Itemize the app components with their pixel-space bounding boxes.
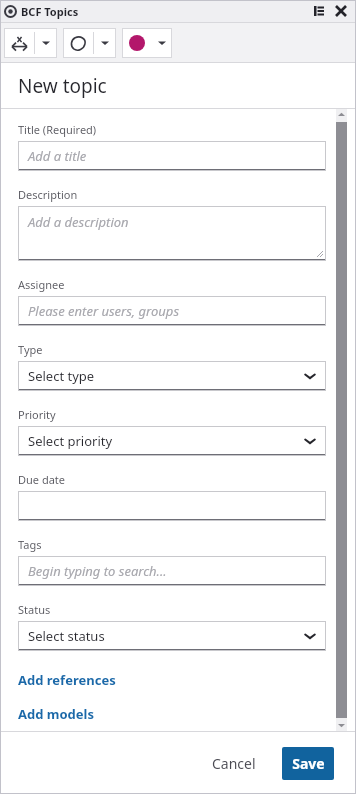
staticText: Title (Required) <box>18 122 97 137</box>
button[interactable]: Begin typing to search... <box>18 556 326 586</box>
button[interactable]: Colour <box>122 28 152 58</box>
button[interactable]: Shape <box>63 28 93 58</box>
staticText: Add a description <box>28 213 129 231</box>
staticText: Add models <box>18 705 94 723</box>
button[interactable]: Select type <box>18 361 326 391</box>
button[interactable]: Cancel <box>200 746 268 781</box>
button[interactable]: Measure <box>4 28 34 58</box>
staticText: Save <box>292 754 325 773</box>
button[interactable]: Select status <box>18 621 326 651</box>
staticText: Status <box>18 602 51 617</box>
button[interactable]: Add a description <box>18 206 326 261</box>
button[interactable]: Scroll down <box>336 720 347 731</box>
button[interactable]: Measure options <box>35 28 57 58</box>
staticText: Priority <box>18 407 56 422</box>
staticText: Add a title <box>28 147 87 165</box>
staticText: Select status <box>28 627 105 645</box>
staticText: Type <box>18 342 43 357</box>
staticText: Please enter users, groups <box>28 302 180 320</box>
button[interactable]: Add references <box>18 671 116 689</box>
button[interactable]: Select priority <box>18 426 326 456</box>
staticText: Begin typing to search... <box>28 562 167 580</box>
button[interactable]: Close <box>332 2 350 20</box>
button[interactable] <box>18 491 326 521</box>
button[interactable]: Scroll up <box>336 109 347 120</box>
button[interactable]: Add a title <box>18 141 326 171</box>
staticText: Select type <box>28 367 95 385</box>
staticText: Tags <box>18 537 42 552</box>
staticText: BCF Topics <box>21 4 79 19</box>
staticText: Description <box>18 187 78 202</box>
staticText: Assignee <box>18 277 65 292</box>
staticText: Due date <box>18 472 66 487</box>
button[interactable]: Shape options <box>94 28 116 58</box>
staticText: Select priority <box>28 432 113 450</box>
button[interactable]: Colour options <box>152 28 172 58</box>
staticText: Cancel <box>212 754 256 773</box>
button[interactable]: Add models <box>18 705 94 723</box>
staticText: Add references <box>18 671 116 689</box>
button[interactable]: Please enter users, groups <box>18 296 326 326</box>
staticText: New topic <box>18 73 107 99</box>
button[interactable]: Save <box>282 747 334 780</box>
button[interactable]: Dock panel <box>310 2 328 20</box>
